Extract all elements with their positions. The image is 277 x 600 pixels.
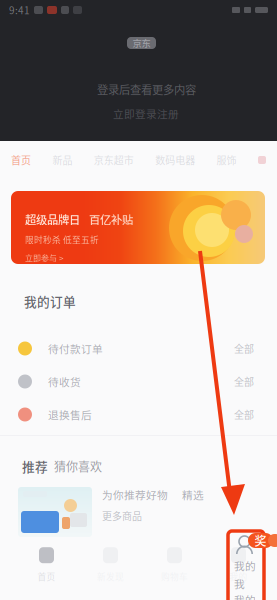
button[interactable]: 待付款订单 xyxy=(0,332,277,365)
button[interactable]: 数码电器 xyxy=(155,149,195,171)
staticText: 全部 xyxy=(234,374,254,389)
staticText: 退换售后 xyxy=(48,407,92,422)
staticText: 数码电器 xyxy=(155,153,195,167)
button[interactable]: 我的 xyxy=(206,541,270,589)
staticText: 奖 xyxy=(254,532,266,549)
button[interactable]: 首页 xyxy=(14,541,78,589)
staticText: 我的 xyxy=(229,570,247,583)
staticText: 百亿补贴 xyxy=(89,211,133,227)
staticText: 我的 xyxy=(234,592,256,600)
staticText: 我的 xyxy=(234,558,256,573)
staticText: 9:41 xyxy=(9,3,30,17)
staticText: 京东超市 xyxy=(94,153,134,167)
staticText: 待付款订单 xyxy=(48,341,103,356)
staticText: 猜你喜欢 xyxy=(54,457,102,475)
staticText: 待收货 xyxy=(48,374,81,389)
button[interactable]: 待收货 xyxy=(0,365,277,398)
staticText: 为你推荐好物 xyxy=(102,487,168,502)
button[interactable]: 为你推荐好物 xyxy=(18,487,265,537)
staticText: 全部 xyxy=(234,341,254,356)
staticText: 服饰 xyxy=(217,153,237,167)
button[interactable]: 首页 xyxy=(11,149,31,171)
staticText: 超级品牌日 xyxy=(25,211,80,227)
staticText: 新品 xyxy=(52,153,72,167)
staticText: 立即登录注册 xyxy=(113,106,179,121)
staticText: 更多商品 xyxy=(102,508,142,523)
staticText: 京东 xyxy=(132,36,150,50)
button[interactable]: 新品 xyxy=(52,149,72,171)
staticText: 推荐 xyxy=(22,457,48,475)
staticText: 我 xyxy=(234,576,245,591)
button[interactable]: 服饰 xyxy=(217,149,237,171)
staticText: 全部 xyxy=(234,407,254,422)
staticText: 首页 xyxy=(11,153,31,167)
staticText: 限时秒杀 低至五折 xyxy=(25,233,99,246)
staticText: 立即参与 > xyxy=(25,252,63,264)
staticText: 精选 xyxy=(182,487,204,502)
staticText: 我的订单 xyxy=(24,292,76,310)
button[interactable]: 退换售后 xyxy=(0,398,277,431)
button[interactable]: 京东超市 xyxy=(94,149,134,171)
staticText: 首页 xyxy=(37,570,55,583)
button[interactable]: Promotion banner xyxy=(11,191,265,264)
staticText: 登录后查看更多内容 xyxy=(97,81,196,97)
